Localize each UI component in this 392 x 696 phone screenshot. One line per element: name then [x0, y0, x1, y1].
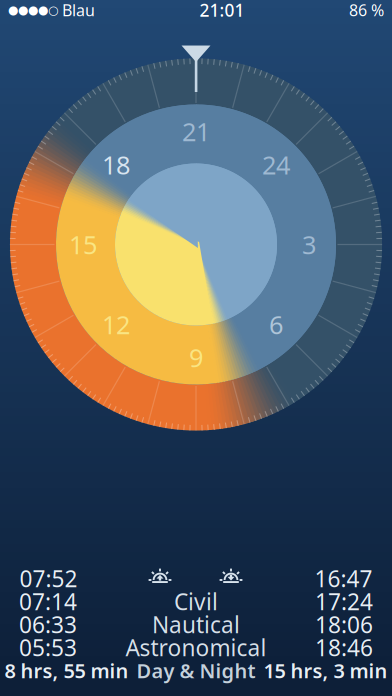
staticText: 18:46: [315, 632, 373, 662]
staticText: 86 %: [349, 0, 384, 21]
staticText: Astronomical: [125, 632, 266, 662]
staticText: 15: [69, 228, 97, 261]
staticText: Day & Night: [136, 657, 255, 684]
staticText: 18: [102, 148, 130, 181]
staticText: 9: [189, 341, 203, 374]
staticText: Nautical: [152, 609, 240, 639]
staticText: 07:52: [19, 563, 77, 593]
staticText: ●●●●: [8, 3, 48, 17]
staticText: 21:01: [199, 0, 244, 21]
staticText: ○: [48, 3, 58, 17]
staticText: 18:06: [315, 609, 373, 639]
staticText: 05:53: [19, 632, 77, 662]
staticText: 07:14: [19, 586, 77, 616]
staticText: 16:47: [314, 563, 372, 593]
staticText: 15 hrs, 3 min: [263, 657, 387, 684]
staticText: Blau: [58, 0, 95, 21]
staticText: 21: [182, 115, 210, 148]
staticText: 12: [102, 308, 130, 341]
staticText: Civil: [174, 586, 218, 616]
staticText: 8 hrs, 55 min: [4, 657, 128, 684]
staticText: 3: [302, 228, 316, 261]
staticText: 24: [262, 148, 290, 181]
staticText: 6: [269, 308, 283, 341]
staticText: 17:24: [315, 586, 373, 616]
staticText: 06:33: [19, 609, 77, 639]
